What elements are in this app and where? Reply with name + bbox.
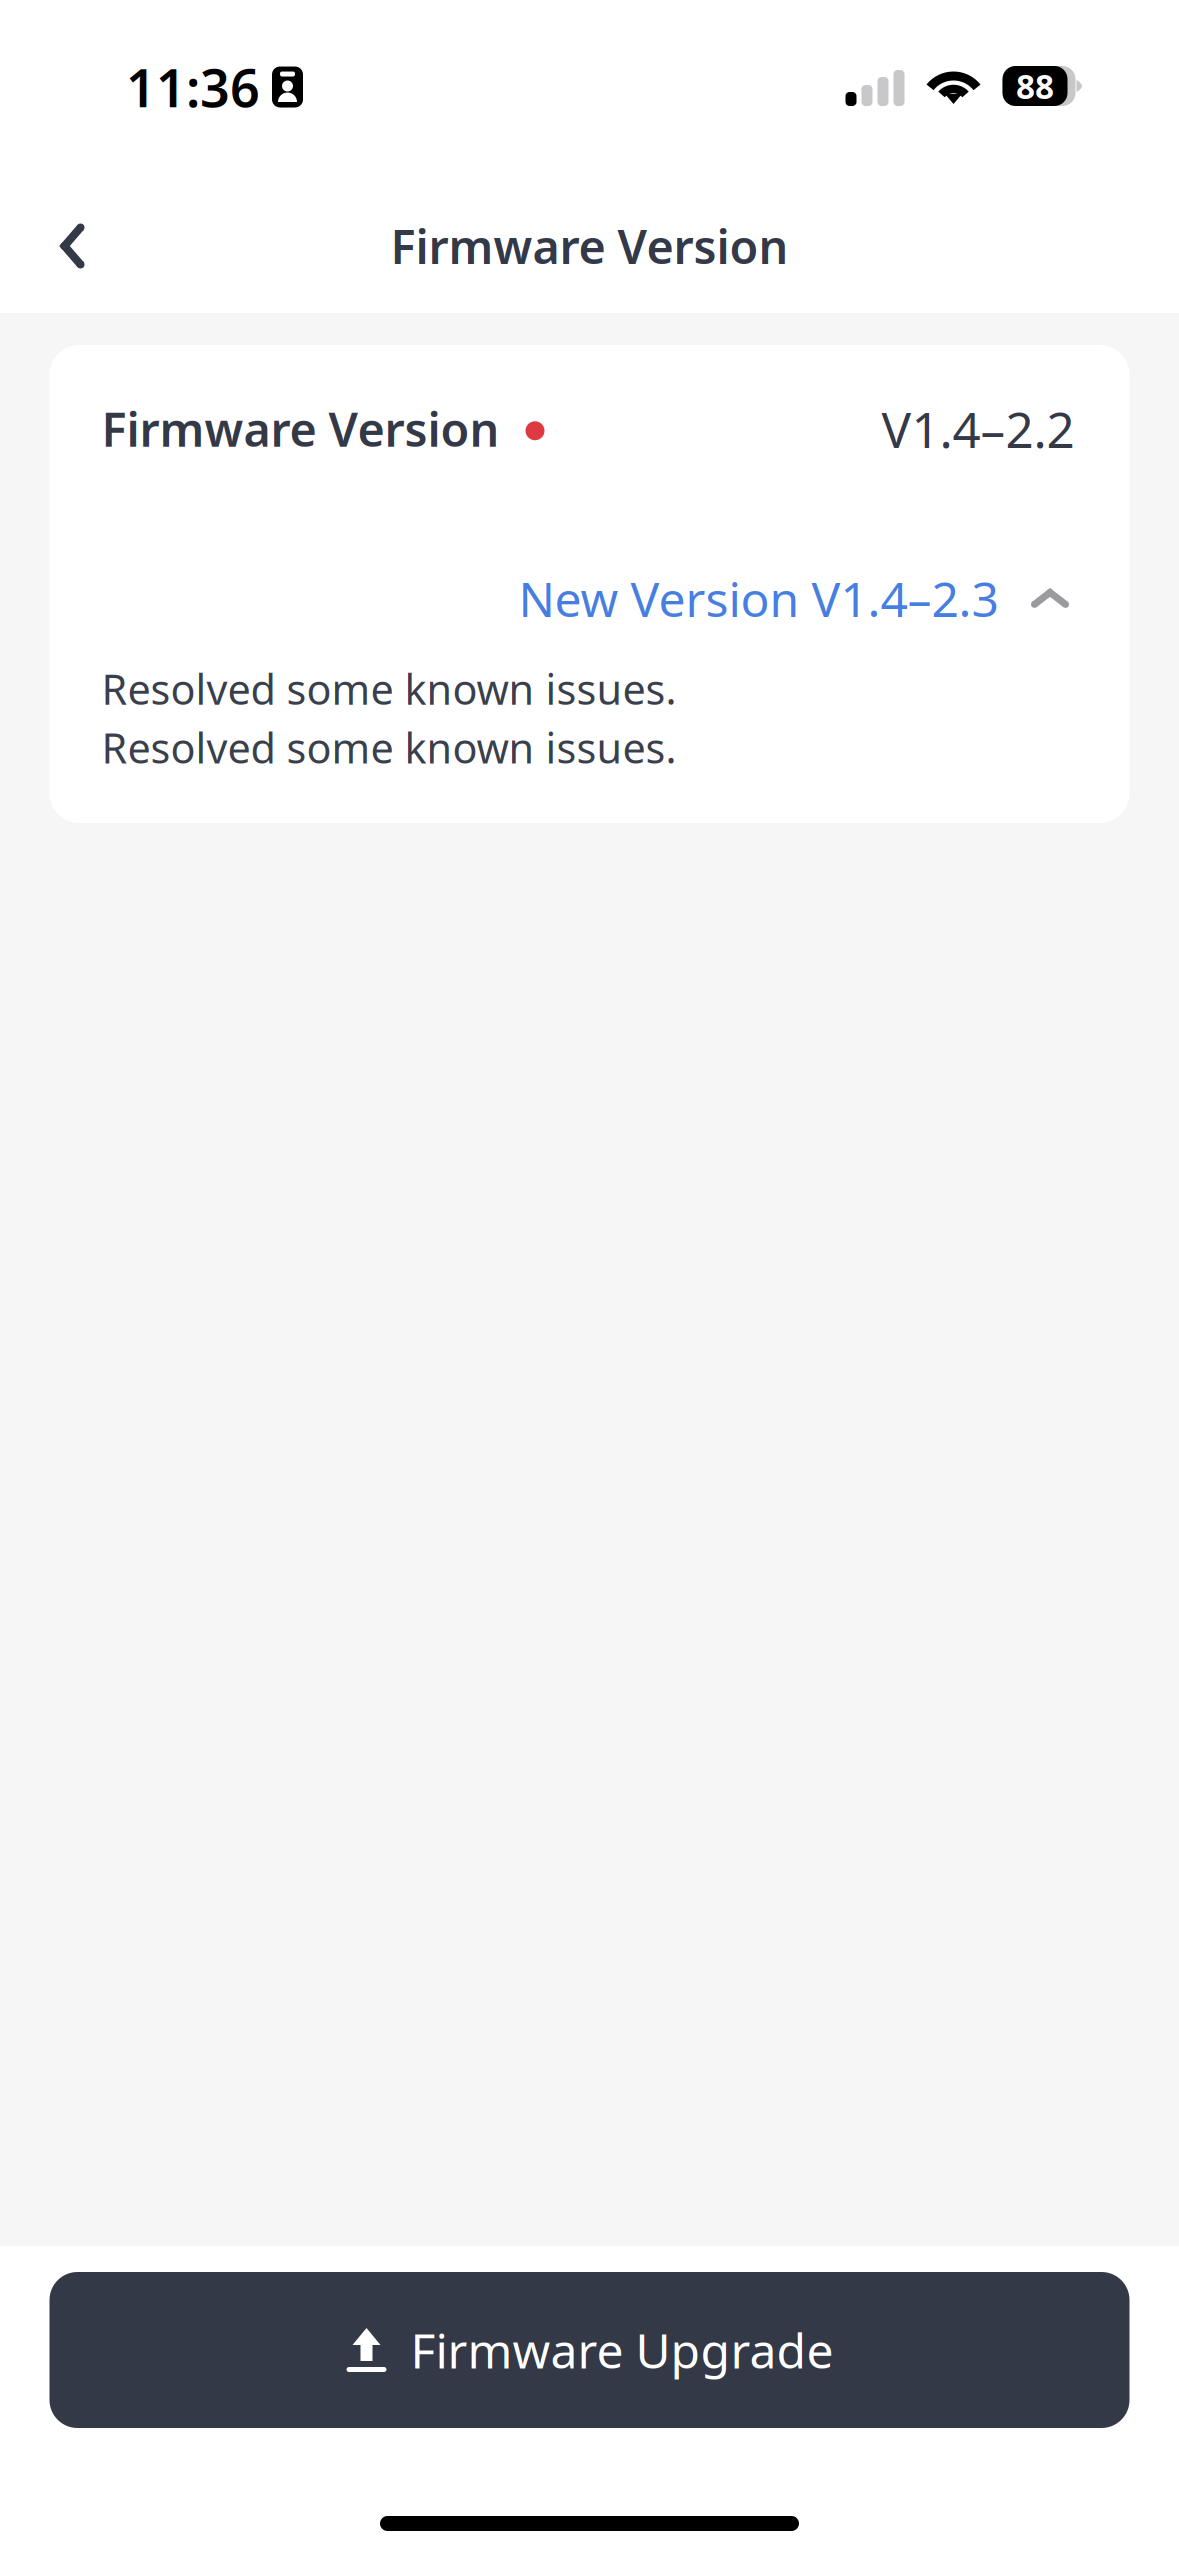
staticText: Firmware Version bbox=[390, 215, 788, 277]
staticText: Resolved some known issues. bbox=[101, 720, 676, 775]
staticText: 88 bbox=[1016, 64, 1054, 108]
staticText: New Version V1.4–2.3 bbox=[518, 566, 998, 630]
staticText: Firmware Version bbox=[101, 398, 499, 460]
button[interactable]: Firmware Upgrade bbox=[49, 2272, 1129, 2428]
button[interactable]: New Version V1.4–2.3 bbox=[101, 461, 1074, 630]
staticText: Firmware Upgrade bbox=[410, 2318, 833, 2382]
staticText: V1.4–2.2 bbox=[881, 396, 1074, 461]
staticText: 11:36 bbox=[126, 52, 260, 122]
button[interactable]: Back bbox=[0, 198, 145, 294]
staticText: Resolved some known issues. bbox=[101, 661, 676, 716]
